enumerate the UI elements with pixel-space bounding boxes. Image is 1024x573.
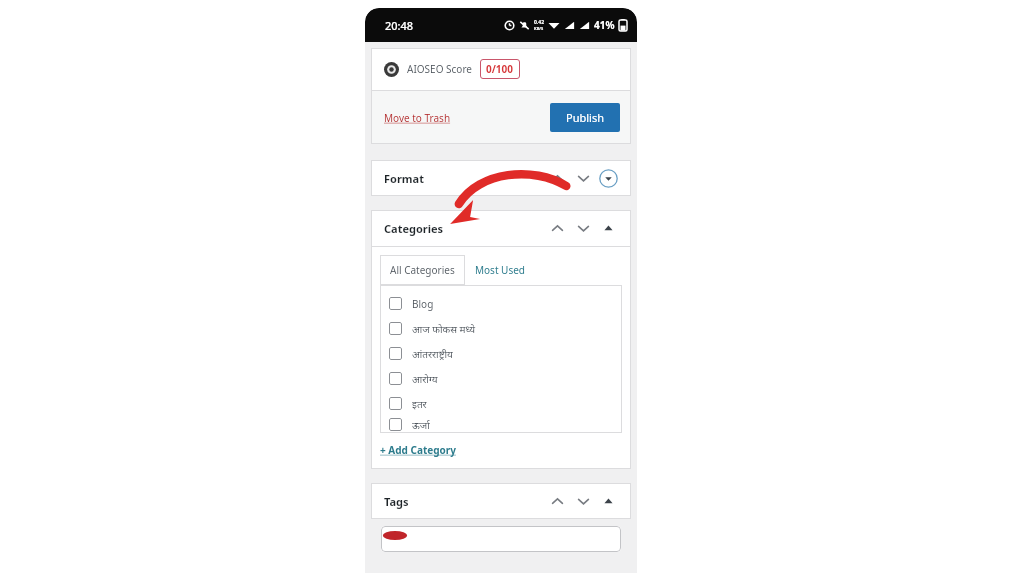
staticText: आंतरराष्ट्रीय bbox=[412, 347, 453, 361]
button[interactable]: Collapse bbox=[599, 219, 618, 238]
button[interactable]: Publish bbox=[550, 103, 620, 132]
staticText: Categories bbox=[384, 221, 444, 236]
button[interactable]: Tags bbox=[365, 483, 637, 519]
button[interactable]: Expand bbox=[599, 169, 618, 188]
button[interactable] bbox=[381, 526, 621, 552]
button[interactable]: Collapse bbox=[599, 492, 618, 511]
staticText: All Categories bbox=[390, 263, 455, 277]
button[interactable]: + Add Category bbox=[380, 443, 456, 457]
staticText: 0/100 bbox=[486, 62, 514, 76]
staticText: आज फोकस मध्ये bbox=[412, 322, 476, 336]
button[interactable]: आरोग्य bbox=[389, 366, 622, 391]
button[interactable]: आंतरराष्ट्रीय bbox=[389, 341, 622, 366]
button[interactable]: Move up bbox=[547, 168, 567, 188]
button[interactable]: इतर bbox=[389, 391, 622, 416]
button[interactable]: Blog bbox=[389, 291, 622, 316]
staticText: 41% bbox=[594, 18, 615, 32]
staticText: इतर bbox=[412, 397, 427, 411]
staticText: Most Used bbox=[475, 263, 526, 277]
button[interactable]: Move down bbox=[573, 491, 593, 511]
staticText: AIOSEO Score bbox=[407, 62, 472, 76]
button[interactable]: Move to Trash bbox=[384, 111, 451, 125]
button[interactable]: All Categories bbox=[380, 255, 465, 285]
button[interactable]: Move down bbox=[573, 218, 593, 238]
button[interactable]: Format bbox=[365, 160, 637, 196]
staticText: KB/S bbox=[534, 26, 544, 31]
button[interactable]: ऊर्जा bbox=[389, 416, 622, 433]
staticText: 20:48 bbox=[385, 18, 414, 33]
staticText: Blog bbox=[412, 297, 434, 311]
staticText: Publish bbox=[566, 110, 604, 125]
staticText: आरोग्य bbox=[412, 372, 438, 386]
button[interactable]: Categories bbox=[371, 210, 631, 246]
button[interactable]: आज फोकस मध्ये bbox=[389, 316, 622, 341]
button[interactable]: Move up bbox=[547, 218, 567, 238]
staticText: Format bbox=[384, 171, 424, 186]
staticText: Tags bbox=[384, 494, 409, 509]
button[interactable]: Move up bbox=[547, 491, 567, 511]
staticText: 0.42 bbox=[534, 19, 544, 26]
button[interactable]: Most Used bbox=[465, 255, 536, 285]
staticText: ऊर्जा bbox=[412, 418, 430, 432]
button[interactable]: Move down bbox=[573, 168, 593, 188]
